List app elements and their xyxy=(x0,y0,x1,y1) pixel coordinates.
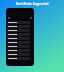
button[interactable] xyxy=(7,25,30,28)
button[interactable] xyxy=(7,41,30,44)
button[interactable] xyxy=(7,45,30,48)
button[interactable] xyxy=(7,37,30,40)
button[interactable] xyxy=(7,57,30,60)
button[interactable] xyxy=(7,49,30,52)
button[interactable] xyxy=(7,29,30,32)
button[interactable] xyxy=(7,33,30,36)
staticText: Dark Mode Supported xyxy=(0,2,64,6)
button[interactable] xyxy=(7,53,30,56)
button[interactable] xyxy=(7,21,30,24)
